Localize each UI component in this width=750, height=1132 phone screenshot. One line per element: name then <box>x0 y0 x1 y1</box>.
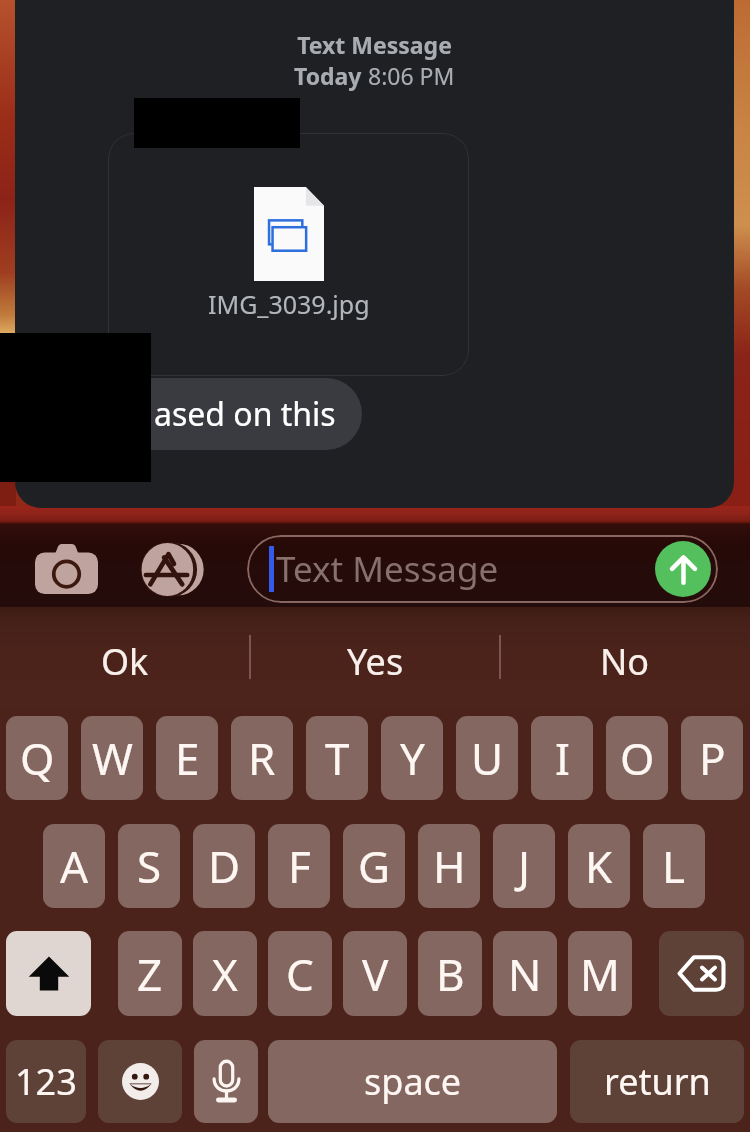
button[interactable]: U <box>456 716 518 800</box>
button[interactable]: return <box>570 1040 744 1123</box>
staticText: IMG_3039.jpg <box>208 287 370 321</box>
staticText: O <box>620 728 655 788</box>
button[interactable]: D <box>193 824 255 908</box>
button[interactable]: IMG_3039.jpg <box>108 133 469 376</box>
staticText: J <box>518 836 531 896</box>
staticText: A <box>60 836 89 896</box>
button[interactable]: Yes <box>250 607 500 706</box>
staticText: L <box>662 836 686 896</box>
button[interactable]: P <box>681 716 743 800</box>
button[interactable]: G <box>343 824 405 908</box>
staticText: Z <box>137 944 163 1004</box>
staticText: G <box>358 836 391 896</box>
button[interactable]: J <box>493 824 555 908</box>
button[interactable]: N <box>493 931 557 1016</box>
button[interactable]: A <box>43 824 105 908</box>
button[interactable]: Q <box>6 716 68 800</box>
staticText: M <box>580 944 620 1004</box>
button[interactable]: Ok <box>0 607 250 706</box>
button[interactable]: Dictate <box>194 1040 258 1123</box>
button[interactable]: E <box>156 716 218 800</box>
staticText: Text Message <box>276 545 499 593</box>
staticText: Ok <box>101 637 149 686</box>
button[interactable]: V <box>343 931 407 1016</box>
staticText: K <box>585 836 613 896</box>
staticText: E <box>175 728 200 788</box>
staticText: V <box>362 944 389 1004</box>
staticText: Q <box>20 728 55 788</box>
staticText: return <box>604 1057 711 1106</box>
staticText: 8:06 PM <box>368 60 455 91</box>
button[interactable]: S <box>118 824 180 908</box>
button[interactable]: M <box>568 931 632 1016</box>
button[interactable]: O <box>606 716 668 800</box>
button[interactable]: R <box>231 716 293 800</box>
staticText: R <box>248 728 276 788</box>
staticText: No <box>600 637 650 686</box>
button[interactable]: L <box>643 824 705 908</box>
staticText: Y <box>400 728 425 788</box>
button[interactable]: B <box>418 931 482 1016</box>
staticText: ased on this <box>154 392 336 436</box>
button[interactable]: K <box>568 824 630 908</box>
button[interactable]: H <box>418 824 480 908</box>
button[interactable]: Y <box>381 716 443 800</box>
staticText: F <box>288 836 311 896</box>
button[interactable]: Text Message <box>247 535 718 603</box>
staticText: H <box>433 836 466 896</box>
button[interactable]: I <box>531 716 593 800</box>
staticText: Today <box>294 60 368 91</box>
staticText: I <box>555 728 570 788</box>
button[interactable]: No <box>500 607 750 706</box>
button[interactable]: Camera <box>25 535 108 603</box>
button[interactable]: W <box>81 716 143 800</box>
button[interactable]: C <box>268 931 332 1016</box>
staticText: Text Message <box>15 29 734 60</box>
button[interactable]: ased on this <box>50 378 362 450</box>
button[interactable]: Shift <box>6 931 91 1016</box>
staticText: C <box>286 944 314 1004</box>
staticText: D <box>208 836 241 896</box>
button[interactable]: space <box>268 1040 557 1123</box>
staticText: Yes <box>347 637 404 686</box>
staticText: space <box>364 1057 462 1106</box>
button[interactable]: App Store <box>138 535 206 603</box>
staticText: W <box>92 728 133 788</box>
staticText: N <box>508 944 542 1004</box>
button[interactable]: 123 <box>6 1040 86 1123</box>
button[interactable]: T <box>306 716 368 800</box>
button[interactable]: Delete <box>659 931 744 1016</box>
button[interactable]: Z <box>118 931 182 1016</box>
staticText: T <box>325 728 350 788</box>
staticText: B <box>436 944 465 1004</box>
button[interactable]: F <box>268 824 330 908</box>
staticText: S <box>137 836 162 896</box>
staticText: P <box>699 728 726 788</box>
staticText: X <box>212 944 238 1004</box>
button[interactable]: X <box>193 931 257 1016</box>
staticText: 123 <box>15 1057 77 1106</box>
button[interactable]: Send <box>655 541 711 597</box>
button[interactable]: Emoji <box>98 1040 182 1123</box>
staticText: U <box>471 728 504 788</box>
